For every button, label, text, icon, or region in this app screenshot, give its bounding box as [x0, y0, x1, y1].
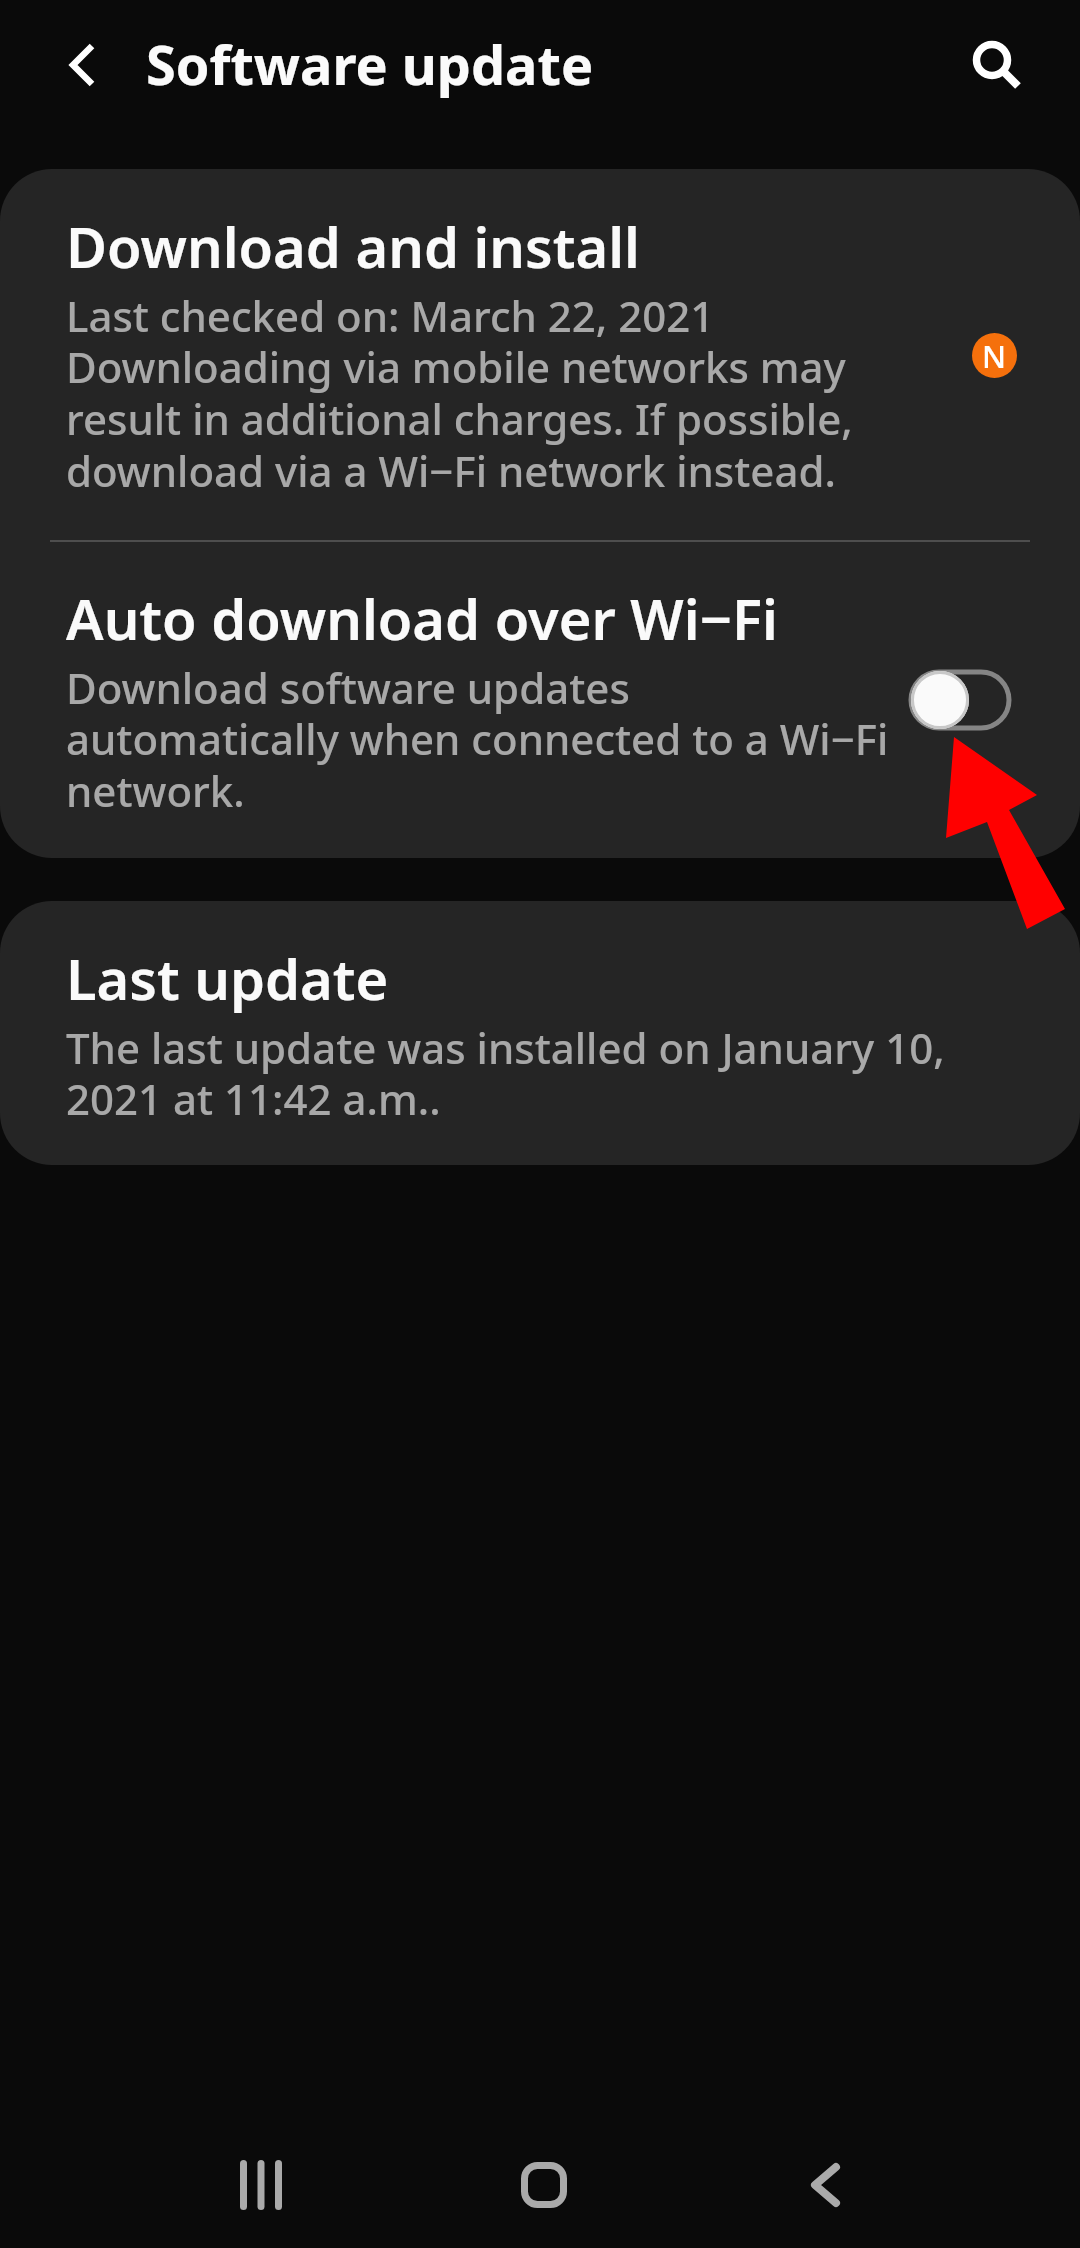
button[interactable]: Search — [948, 21, 1038, 111]
button[interactable]: Download and install — [0, 169, 1080, 540]
button[interactable]: Home — [464, 2105, 624, 2248]
staticText: N — [982, 335, 1007, 377]
staticText: Last update — [66, 940, 389, 1016]
staticText: Software update — [146, 27, 594, 101]
staticText: The last update was installed on January… — [66, 1019, 966, 1128]
staticText: Download and install — [66, 208, 640, 284]
button[interactable]: Last update — [0, 901, 1080, 1165]
button[interactable]: Recent apps — [181, 2105, 341, 2248]
button[interactable]: Auto download over Wi-Fi — [908, 668, 1012, 732]
button[interactable]: Navigate up — [40, 22, 130, 112]
staticText: Last checked on: March 22, 2021 Download… — [66, 287, 896, 500]
staticText: Auto download over Wi−Fi — [66, 580, 778, 656]
button[interactable]: Back — [743, 2105, 903, 2248]
button[interactable]: Auto download over Wi−Fi — [0, 542, 1080, 858]
staticText: Download software updates automatically … — [66, 659, 896, 820]
